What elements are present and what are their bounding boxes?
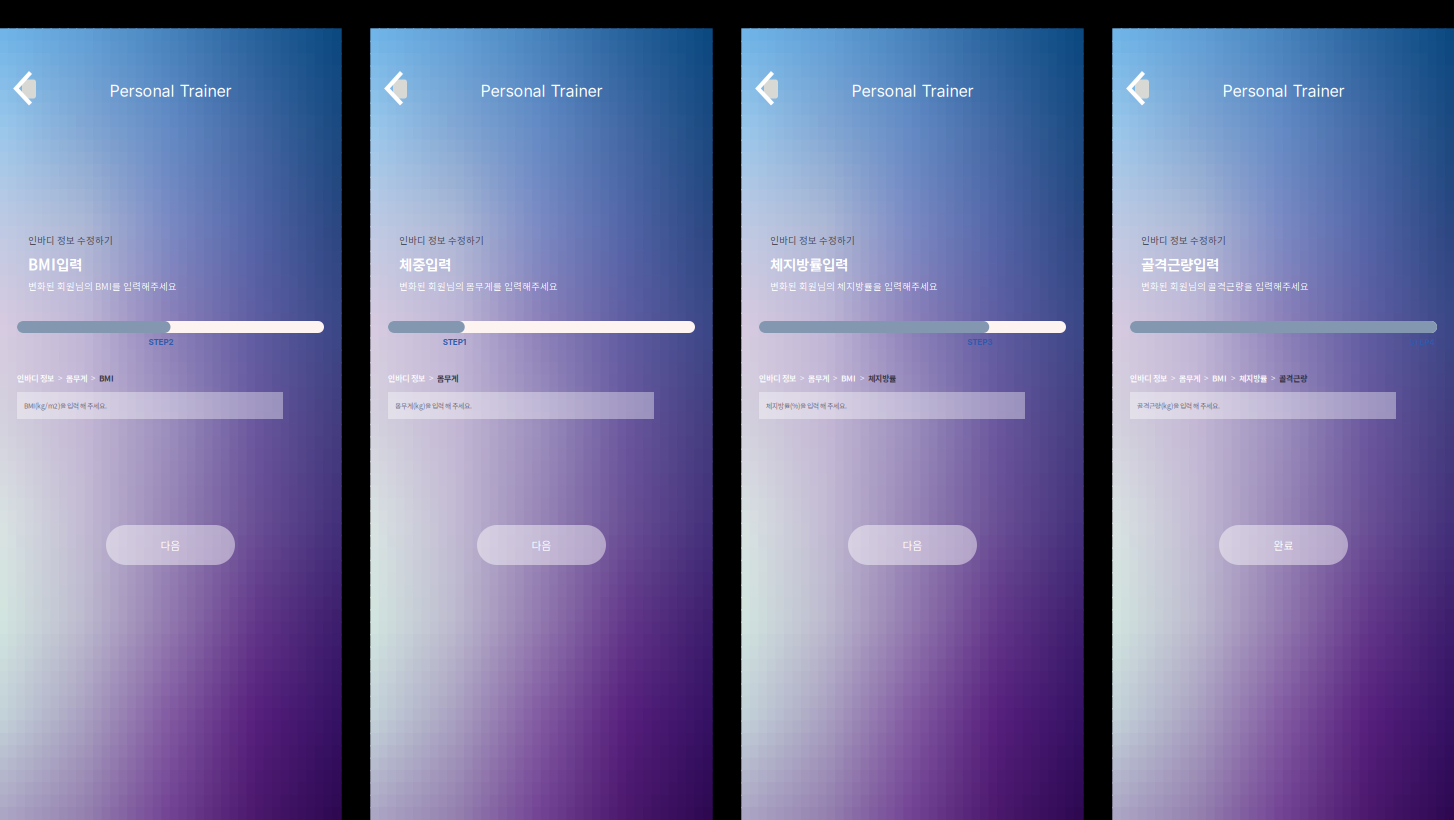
button[interactable]: 다음 bbox=[477, 525, 606, 565]
staticText: 다음 bbox=[160, 537, 180, 553]
staticText: > bbox=[429, 372, 433, 384]
staticText: 변화된 회원님의 BMI를 입력해주세요 bbox=[28, 279, 177, 293]
staticText: BMI입력 bbox=[28, 253, 82, 275]
staticText: 인바디 정보 bbox=[759, 372, 796, 384]
staticText: 몸무게 bbox=[437, 372, 458, 384]
staticText: Personal Trainer bbox=[109, 81, 231, 101]
staticText: > bbox=[1231, 372, 1235, 384]
staticText: 몸무게(kg)을 입력 해 주세요. bbox=[395, 401, 472, 410]
staticText: 인바디 정보 수정하기 bbox=[399, 233, 484, 247]
staticText: 인바디 정보 수정하기 bbox=[28, 233, 113, 247]
staticText: 몸무게 bbox=[808, 372, 829, 384]
staticText: STEP1 bbox=[443, 337, 466, 347]
staticText: 체중입력 bbox=[399, 253, 451, 275]
button[interactable]: 다음 bbox=[848, 525, 977, 565]
staticText: BMI bbox=[1212, 372, 1227, 384]
staticText: 다음 bbox=[902, 537, 922, 553]
staticText: > bbox=[1271, 372, 1275, 384]
button[interactable]: Back bbox=[376, 63, 420, 115]
staticText: 인바디 정보 bbox=[1130, 372, 1167, 384]
staticText: > bbox=[833, 372, 837, 384]
staticText: 다음 bbox=[531, 537, 551, 553]
staticText: 변화된 회원님의 몸무게를 입력해주세요 bbox=[399, 279, 558, 293]
button[interactable]: 완료 bbox=[1219, 525, 1348, 565]
staticText: 골격근량 bbox=[1279, 372, 1307, 384]
staticText: 체지방률 bbox=[1239, 372, 1267, 384]
staticText: 골격근량입력 bbox=[1141, 253, 1219, 275]
staticText: 골격근량(kg)을 입력 해 주세요. bbox=[1137, 401, 1220, 410]
staticText: 인바디 정보 bbox=[388, 372, 425, 384]
staticText: Personal Trainer bbox=[851, 81, 973, 101]
staticText: 체지방률입력 bbox=[770, 253, 848, 275]
staticText: 완료 bbox=[1273, 537, 1293, 553]
staticText: STEP3 bbox=[967, 337, 992, 347]
button[interactable]: Back bbox=[5, 63, 49, 115]
button[interactable]: 다음 bbox=[106, 525, 235, 565]
staticText: STEP4 bbox=[1409, 337, 1434, 347]
staticText: 변화된 회원님의 체지방률을 입력해주세요 bbox=[770, 279, 938, 293]
staticText: > bbox=[800, 372, 804, 384]
staticText: > bbox=[860, 372, 864, 384]
staticText: 몸무게 bbox=[1179, 372, 1200, 384]
staticText: 인바디 정보 bbox=[17, 372, 54, 384]
staticText: 변화된 회원님의 골격근량을 입력해주세요 bbox=[1141, 279, 1309, 293]
staticText: > bbox=[1171, 372, 1175, 384]
staticText: 체지방률(%)을 입력 해 주세요. bbox=[766, 401, 847, 410]
staticText: Personal Trainer bbox=[1222, 81, 1344, 101]
staticText: BMI bbox=[841, 372, 856, 384]
staticText: Personal Trainer bbox=[480, 81, 602, 101]
staticText: BMI bbox=[99, 372, 114, 384]
staticText: > bbox=[58, 372, 62, 384]
staticText: BMI(kg/m2)을 입력 해 주세요. bbox=[24, 401, 107, 410]
staticText: 인바디 정보 수정하기 bbox=[770, 233, 855, 247]
staticText: > bbox=[1204, 372, 1208, 384]
button[interactable]: Back bbox=[747, 63, 791, 115]
staticText: 몸무게 bbox=[66, 372, 87, 384]
staticText: > bbox=[91, 372, 95, 384]
staticText: 체지방률 bbox=[868, 372, 896, 384]
button[interactable]: Back bbox=[1118, 63, 1162, 115]
staticText: 인바디 정보 수정하기 bbox=[1141, 233, 1226, 247]
staticText: STEP2 bbox=[148, 337, 173, 347]
